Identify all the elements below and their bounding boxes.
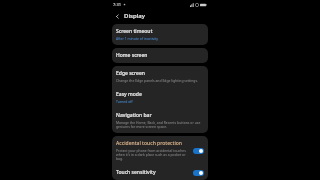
staticText: Home screen xyxy=(116,52,148,59)
button[interactable]: Touch sensitivity xyxy=(112,165,208,180)
staticText: Edge screen xyxy=(116,70,145,77)
staticText: Navigation bar xyxy=(116,112,152,119)
button[interactable]: Accidental touch protection xyxy=(112,136,208,165)
staticText: Screen timeout xyxy=(116,28,153,35)
staticText: Turned off xyxy=(116,99,133,104)
staticText: 7:31 xyxy=(113,2,121,7)
staticText: After 1 minute of inactivity xyxy=(116,36,159,41)
button[interactable]: Toggle on xyxy=(193,170,204,176)
staticText: Protect your phone from accidental touch… xyxy=(116,148,190,161)
staticText: Display xyxy=(124,12,145,20)
staticText: Touch sensitivity xyxy=(116,169,156,176)
staticText: Accidental touch protection xyxy=(116,140,182,147)
staticText: Easy mode xyxy=(116,91,142,98)
button[interactable]: Back xyxy=(112,11,122,21)
button[interactable]: Navigation bar xyxy=(112,108,208,133)
button[interactable]: Screen timeout xyxy=(112,24,208,45)
button[interactable]: Edge screen xyxy=(112,66,208,87)
button[interactable]: Easy mode xyxy=(112,87,208,108)
staticText: Manage the Home, Back, and Recents butto… xyxy=(116,120,204,129)
button[interactable]: Toggle on xyxy=(193,148,204,154)
staticText: Change the Edge panels and Edge lighting… xyxy=(116,78,198,83)
button[interactable]: Home screen xyxy=(112,48,208,63)
